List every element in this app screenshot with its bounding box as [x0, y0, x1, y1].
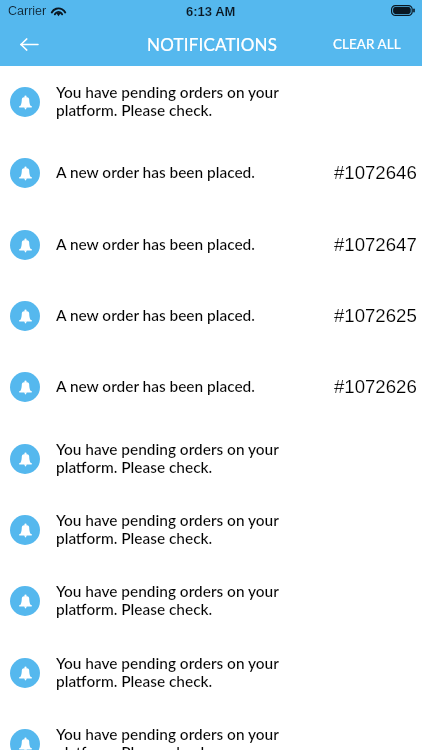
staticText: A new order has been placed.	[56, 377, 255, 395]
staticText: You have pending orders on your platform…	[56, 511, 288, 547]
staticText: A new order has been placed.	[56, 163, 255, 181]
button[interactable]: You have pending orders on your platform…	[0, 565, 422, 636]
staticText: You have pending orders on your platform…	[56, 83, 288, 119]
button[interactable]: You have pending orders on your platform…	[0, 494, 422, 565]
staticText: You have pending orders on your platform…	[56, 654, 288, 690]
staticText: NOTIFICATIONS	[147, 34, 278, 54]
button[interactable]: You have pending orders on your platform…	[0, 423, 422, 494]
staticText: #1072647	[334, 234, 417, 255]
staticText: CLEAR ALL	[333, 36, 401, 52]
staticText: A new order has been placed.	[56, 235, 255, 253]
button[interactable]: A new order has been placed.	[0, 137, 422, 208]
button[interactable]: You have pending orders on your platform…	[0, 66, 422, 137]
button[interactable]: You have pending orders on your platform…	[0, 708, 422, 750]
staticText: You have pending orders on your platform…	[56, 582, 288, 618]
button[interactable]: Back	[0, 22, 58, 66]
button[interactable]: CLEAR ALL	[321, 22, 422, 66]
staticText: #1072646	[334, 162, 417, 183]
button[interactable]: A new order has been placed.	[0, 209, 422, 280]
staticText: You have pending orders on your platform…	[56, 440, 288, 476]
button[interactable]: You have pending orders on your platform…	[0, 637, 422, 708]
staticText: 6:13 AM	[186, 4, 236, 19]
staticText: A new order has been placed.	[56, 306, 255, 324]
staticText: Carrier	[8, 4, 47, 18]
button[interactable]: A new order has been placed.	[0, 280, 422, 351]
button[interactable]: A new order has been placed.	[0, 351, 422, 422]
staticText: #1072626	[334, 376, 417, 397]
staticText: #1072625	[334, 305, 417, 326]
staticText: You have pending orders on your platform…	[56, 725, 288, 750]
